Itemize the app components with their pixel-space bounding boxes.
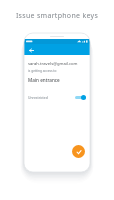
staticText: sarah.travels@gmail.com	[28, 61, 78, 67]
staticText: Unrestricted	[28, 95, 48, 100]
button[interactable]: Confirm	[72, 145, 85, 158]
staticText: Issue smartphone keys	[0, 11, 114, 21]
button[interactable]: Unrestricted	[28, 92, 86, 102]
staticText: is getting access to	[28, 69, 57, 73]
button[interactable]: Navigate up	[27, 46, 35, 54]
staticText: Main entrance	[28, 77, 60, 83]
